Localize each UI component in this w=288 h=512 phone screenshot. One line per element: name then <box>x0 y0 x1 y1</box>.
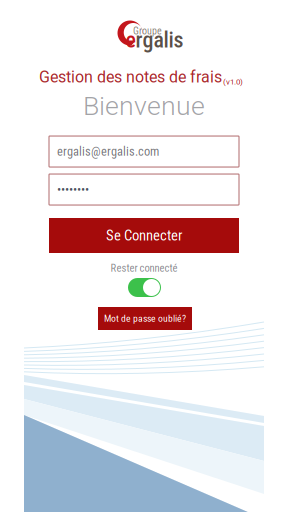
button[interactable]: Se Connecter <box>49 218 239 253</box>
staticText: Se Connecter <box>106 227 182 244</box>
staticText: Mot de passe oublié? <box>104 313 186 324</box>
staticText: •••••••• <box>57 182 89 197</box>
staticText: e <box>125 27 135 53</box>
button[interactable]: Mot de passe oublié? <box>98 307 192 330</box>
button[interactable]: Rester connecté <box>128 278 161 297</box>
staticText: Rester connecté <box>110 262 177 274</box>
staticText: (v1.0) <box>223 77 243 86</box>
staticText: rgalis <box>135 27 183 53</box>
staticText: ergalis@ergalis.com <box>57 144 159 159</box>
staticText: Groupe <box>133 25 162 37</box>
staticText: Gestion des notes de frais <box>39 68 222 86</box>
staticText: Bienvenue <box>83 90 205 122</box>
